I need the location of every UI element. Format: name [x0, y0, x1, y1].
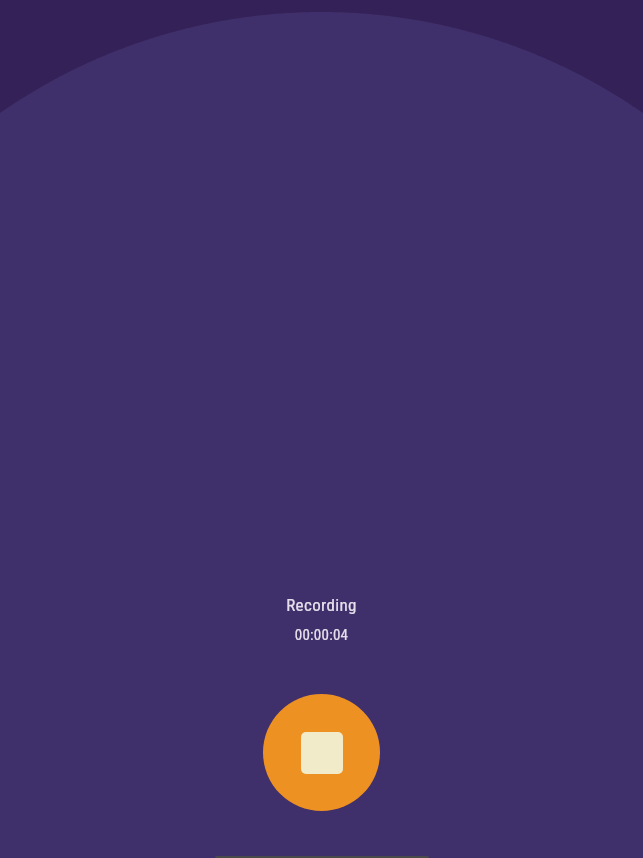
- staticText: Recording: [0, 595, 643, 615]
- staticText: 00:00:04: [0, 626, 643, 644]
- button[interactable]: Stop recording: [263, 694, 380, 811]
